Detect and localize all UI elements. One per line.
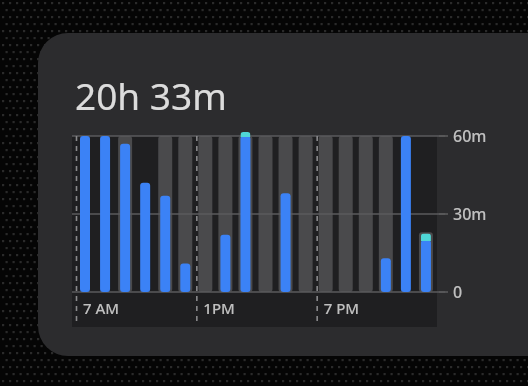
button[interactable]: Screen time chart, 20 hours 33 minutes bbox=[0, 0, 528, 386]
